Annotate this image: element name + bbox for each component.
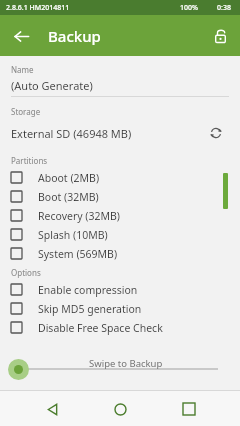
- button[interactable]: Back: [35, 392, 69, 426]
- button[interactable]: External SD (46948 MB): [11, 126, 203, 141]
- button[interactable]: (Auto Generate): [11, 78, 229, 97]
- staticText: Recovery (32MB): [38, 209, 120, 223]
- button[interactable]: Recovery (32MB): [0, 206, 240, 225]
- staticText: Boot (32MB): [38, 190, 99, 204]
- staticText: Skip MD5 generation: [38, 302, 142, 316]
- button[interactable]: Disable Free Space Check: [0, 318, 240, 337]
- button[interactable]: Skip MD5 generation: [0, 299, 240, 318]
- button[interactable]: Splash (10MB): [0, 225, 240, 244]
- staticText: Backup: [48, 26, 101, 46]
- button[interactable]: System (569MB): [0, 244, 240, 263]
- button[interactable]: Unlock: [206, 22, 234, 50]
- staticText: Enable compression: [38, 283, 138, 297]
- staticText: Storage: [11, 106, 41, 117]
- button[interactable]: Boot (32MB): [0, 187, 240, 206]
- staticText: Disable Free Space Check: [38, 321, 163, 335]
- staticText: 0:38: [217, 3, 231, 13]
- staticText: Options: [11, 267, 41, 278]
- staticText: 2.8.6.1 HM2014811: [6, 3, 70, 13]
- button[interactable]: Refresh storage: [203, 120, 229, 146]
- staticText: External SD (46948 MB): [11, 126, 132, 141]
- staticText: 100%: [180, 3, 198, 13]
- button[interactable]: Recents: [172, 392, 206, 426]
- button[interactable]: Home: [103, 392, 137, 426]
- staticText: System (569MB): [38, 247, 118, 261]
- button[interactable]: Enable compression: [0, 280, 240, 299]
- button[interactable]: Aboot (2MB): [0, 168, 240, 187]
- staticText: Aboot (2MB): [38, 171, 100, 185]
- staticText: Name: [11, 64, 34, 75]
- staticText: Partitions: [11, 155, 48, 166]
- staticText: Swipe to Backup: [89, 357, 163, 370]
- button[interactable]: Back: [5, 20, 37, 52]
- staticText: (Auto Generate): [11, 78, 93, 93]
- staticText: Splash (10MB): [38, 228, 108, 242]
- button[interactable]: Swipe to Backup: [0, 354, 240, 384]
